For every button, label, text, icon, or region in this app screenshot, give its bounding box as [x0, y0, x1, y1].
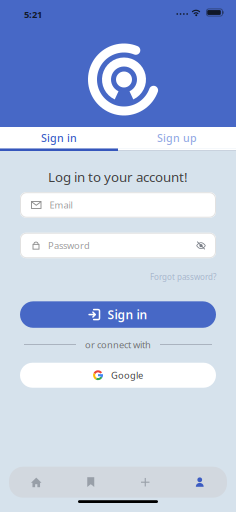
staticText: Email — [49, 199, 72, 211]
button[interactable]: Password — [20, 233, 216, 258]
button[interactable]: Sign up — [118, 127, 236, 148]
button[interactable]: Sign in — [20, 301, 216, 328]
button[interactable] — [63, 477, 118, 487]
button[interactable]: Forgot password? — [150, 272, 216, 282]
button[interactable]: Email — [20, 192, 216, 218]
staticText: or connect with — [85, 338, 151, 351]
staticText: Sign in — [107, 307, 147, 322]
staticText: Log in to your account! — [48, 168, 188, 186]
button[interactable]: Sign in — [0, 127, 118, 148]
staticText: Password — [48, 239, 90, 252]
button[interactable] — [118, 477, 172, 487]
staticText: Sign in — [41, 131, 77, 145]
staticText: Google — [111, 369, 143, 381]
button[interactable] — [172, 477, 227, 487]
staticText: Sign up — [157, 131, 197, 145]
staticText: 5:21 — [24, 8, 42, 21]
button[interactable] — [9, 477, 63, 487]
button[interactable]: Google — [20, 363, 216, 388]
staticText: Forgot password? — [150, 272, 216, 282]
